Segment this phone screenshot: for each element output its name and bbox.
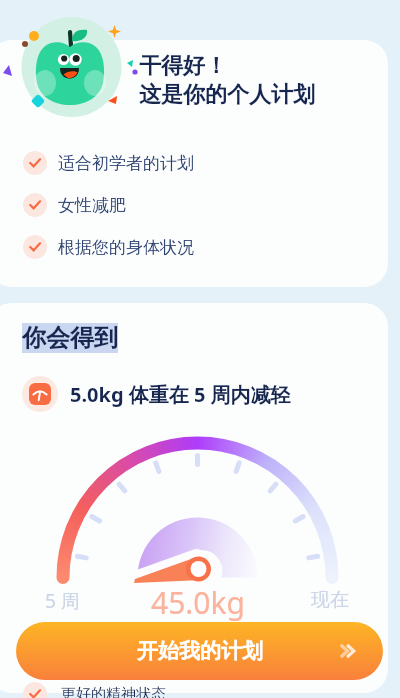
staticText: 5.0kg 体重在 5 周内减轻 <box>70 381 291 408</box>
staticText: 适合初学者的计划 <box>58 153 194 174</box>
staticText: 根据您的身体状况 <box>58 237 194 258</box>
staticText: 现在 <box>311 588 349 612</box>
staticText: 干得好！ <box>139 52 227 80</box>
staticText: 你会得到 <box>22 323 118 353</box>
staticText: 开始我的计划 <box>137 638 263 664</box>
staticText: 这是你的个人计划 <box>139 81 315 109</box>
staticText: 更好的精神状态 <box>61 685 166 698</box>
button[interactable]: 开始我的计划 <box>16 622 383 680</box>
staticText: 45.0kg <box>151 582 245 623</box>
staticText: 女性减肥 <box>58 195 126 216</box>
staticText: 5 周 <box>45 588 80 614</box>
